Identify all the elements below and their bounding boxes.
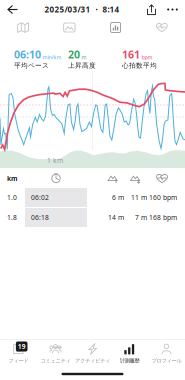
staticText: 14 m: [108, 213, 124, 222]
staticText: プロフィール: [151, 357, 181, 364]
staticText: 168 bpm: [149, 213, 177, 222]
button[interactable]: コミュニティ: [37, 338, 74, 370]
staticText: bpm: [141, 54, 152, 61]
staticText: 6 m: [112, 193, 124, 202]
button[interactable]: Back: [0, 0, 23, 19]
staticText: 7 m: [135, 213, 147, 222]
staticText: 1 km: [47, 156, 63, 165]
staticText: 06:18: [31, 213, 49, 222]
staticText: 上昇高度: [68, 61, 96, 70]
staticText: 心拍数平均: [122, 61, 157, 70]
staticText: 11 m: [131, 193, 147, 202]
button[interactable]: More options: [162, 0, 185, 19]
staticText: min/km: [42, 54, 61, 61]
staticText: 160 bpm: [149, 193, 177, 202]
staticText: フィード: [8, 357, 28, 364]
button[interactable]: アクティビティ: [74, 338, 111, 370]
button[interactable]: Map: [0, 22, 46, 33]
staticText: 平均ペース: [14, 61, 49, 70]
staticText: アクティビティ: [75, 357, 110, 364]
staticText: 20: [68, 47, 80, 61]
button[interactable]: プロフィール: [148, 338, 185, 370]
staticText: 2025/03/31 ・ 8:14: [44, 4, 119, 15]
button[interactable]: 19: [0, 338, 37, 370]
staticText: km: [7, 174, 18, 183]
staticText: 1.0: [7, 193, 17, 202]
staticText: 1.8: [7, 213, 17, 222]
staticText: 06:02: [31, 193, 49, 202]
staticText: コミュニティ: [40, 357, 70, 364]
staticText: m: [81, 54, 86, 61]
button[interactable]: Heart rate: [139, 22, 185, 33]
staticText: 06:10: [14, 47, 41, 61]
button[interactable]: Photos: [46, 22, 92, 33]
button[interactable]: 計測履歴: [111, 338, 148, 370]
staticText: 19: [18, 342, 26, 351]
staticText: 計測履歴: [119, 357, 139, 364]
button[interactable]: Charts: [92, 22, 139, 33]
staticText: 161: [122, 47, 140, 61]
button[interactable]: Share: [141, 0, 162, 19]
